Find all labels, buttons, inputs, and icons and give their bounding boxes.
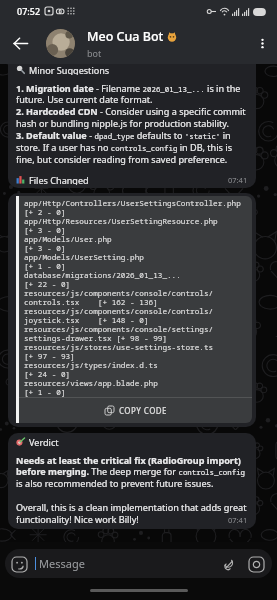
button[interactable]: Camera [242,550,270,578]
staticText: 07:41 [228,515,248,525]
staticText: Files Changed [29,174,89,185]
button[interactable]: More options [249,22,275,64]
staticText: 07:52 [17,5,41,17]
staticText: COPY CODE [119,405,167,416]
staticText: Message [39,556,85,571]
button[interactable]: Attach file [214,550,242,578]
staticText: 07:41 [228,175,248,185]
button[interactable]: Profile photo [46,29,75,58]
staticText: bot [87,47,102,59]
staticText: Needs at least the critical fix (RadioGr… [16,454,248,526]
button[interactable]: Back [0,22,40,64]
staticText: Minor Suggestions [29,64,110,75]
staticText: 1. Migration date - Filename 2026_01_13_… [16,82,248,166]
staticText: app/Http/Controllers/UserSettingsControl… [24,198,241,397]
button[interactable]: Emoji [5,550,33,578]
staticText: Meo Cua Bot [87,28,164,45]
staticText: Verdict [29,436,59,447]
button[interactable]: COPY CODE [19,398,252,423]
